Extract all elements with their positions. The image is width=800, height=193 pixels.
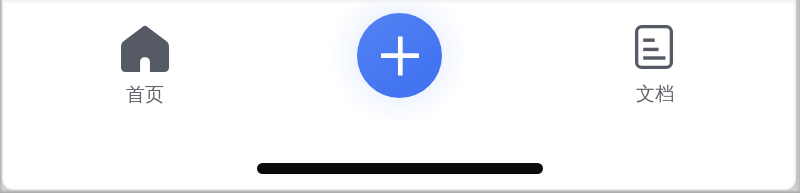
staticText: 文档	[636, 82, 674, 106]
button[interactable]: 文档	[609, 18, 699, 108]
button[interactable]: 首页	[100, 18, 190, 108]
button[interactable]: 新建	[357, 13, 442, 98]
staticText: 首页	[126, 83, 164, 107]
